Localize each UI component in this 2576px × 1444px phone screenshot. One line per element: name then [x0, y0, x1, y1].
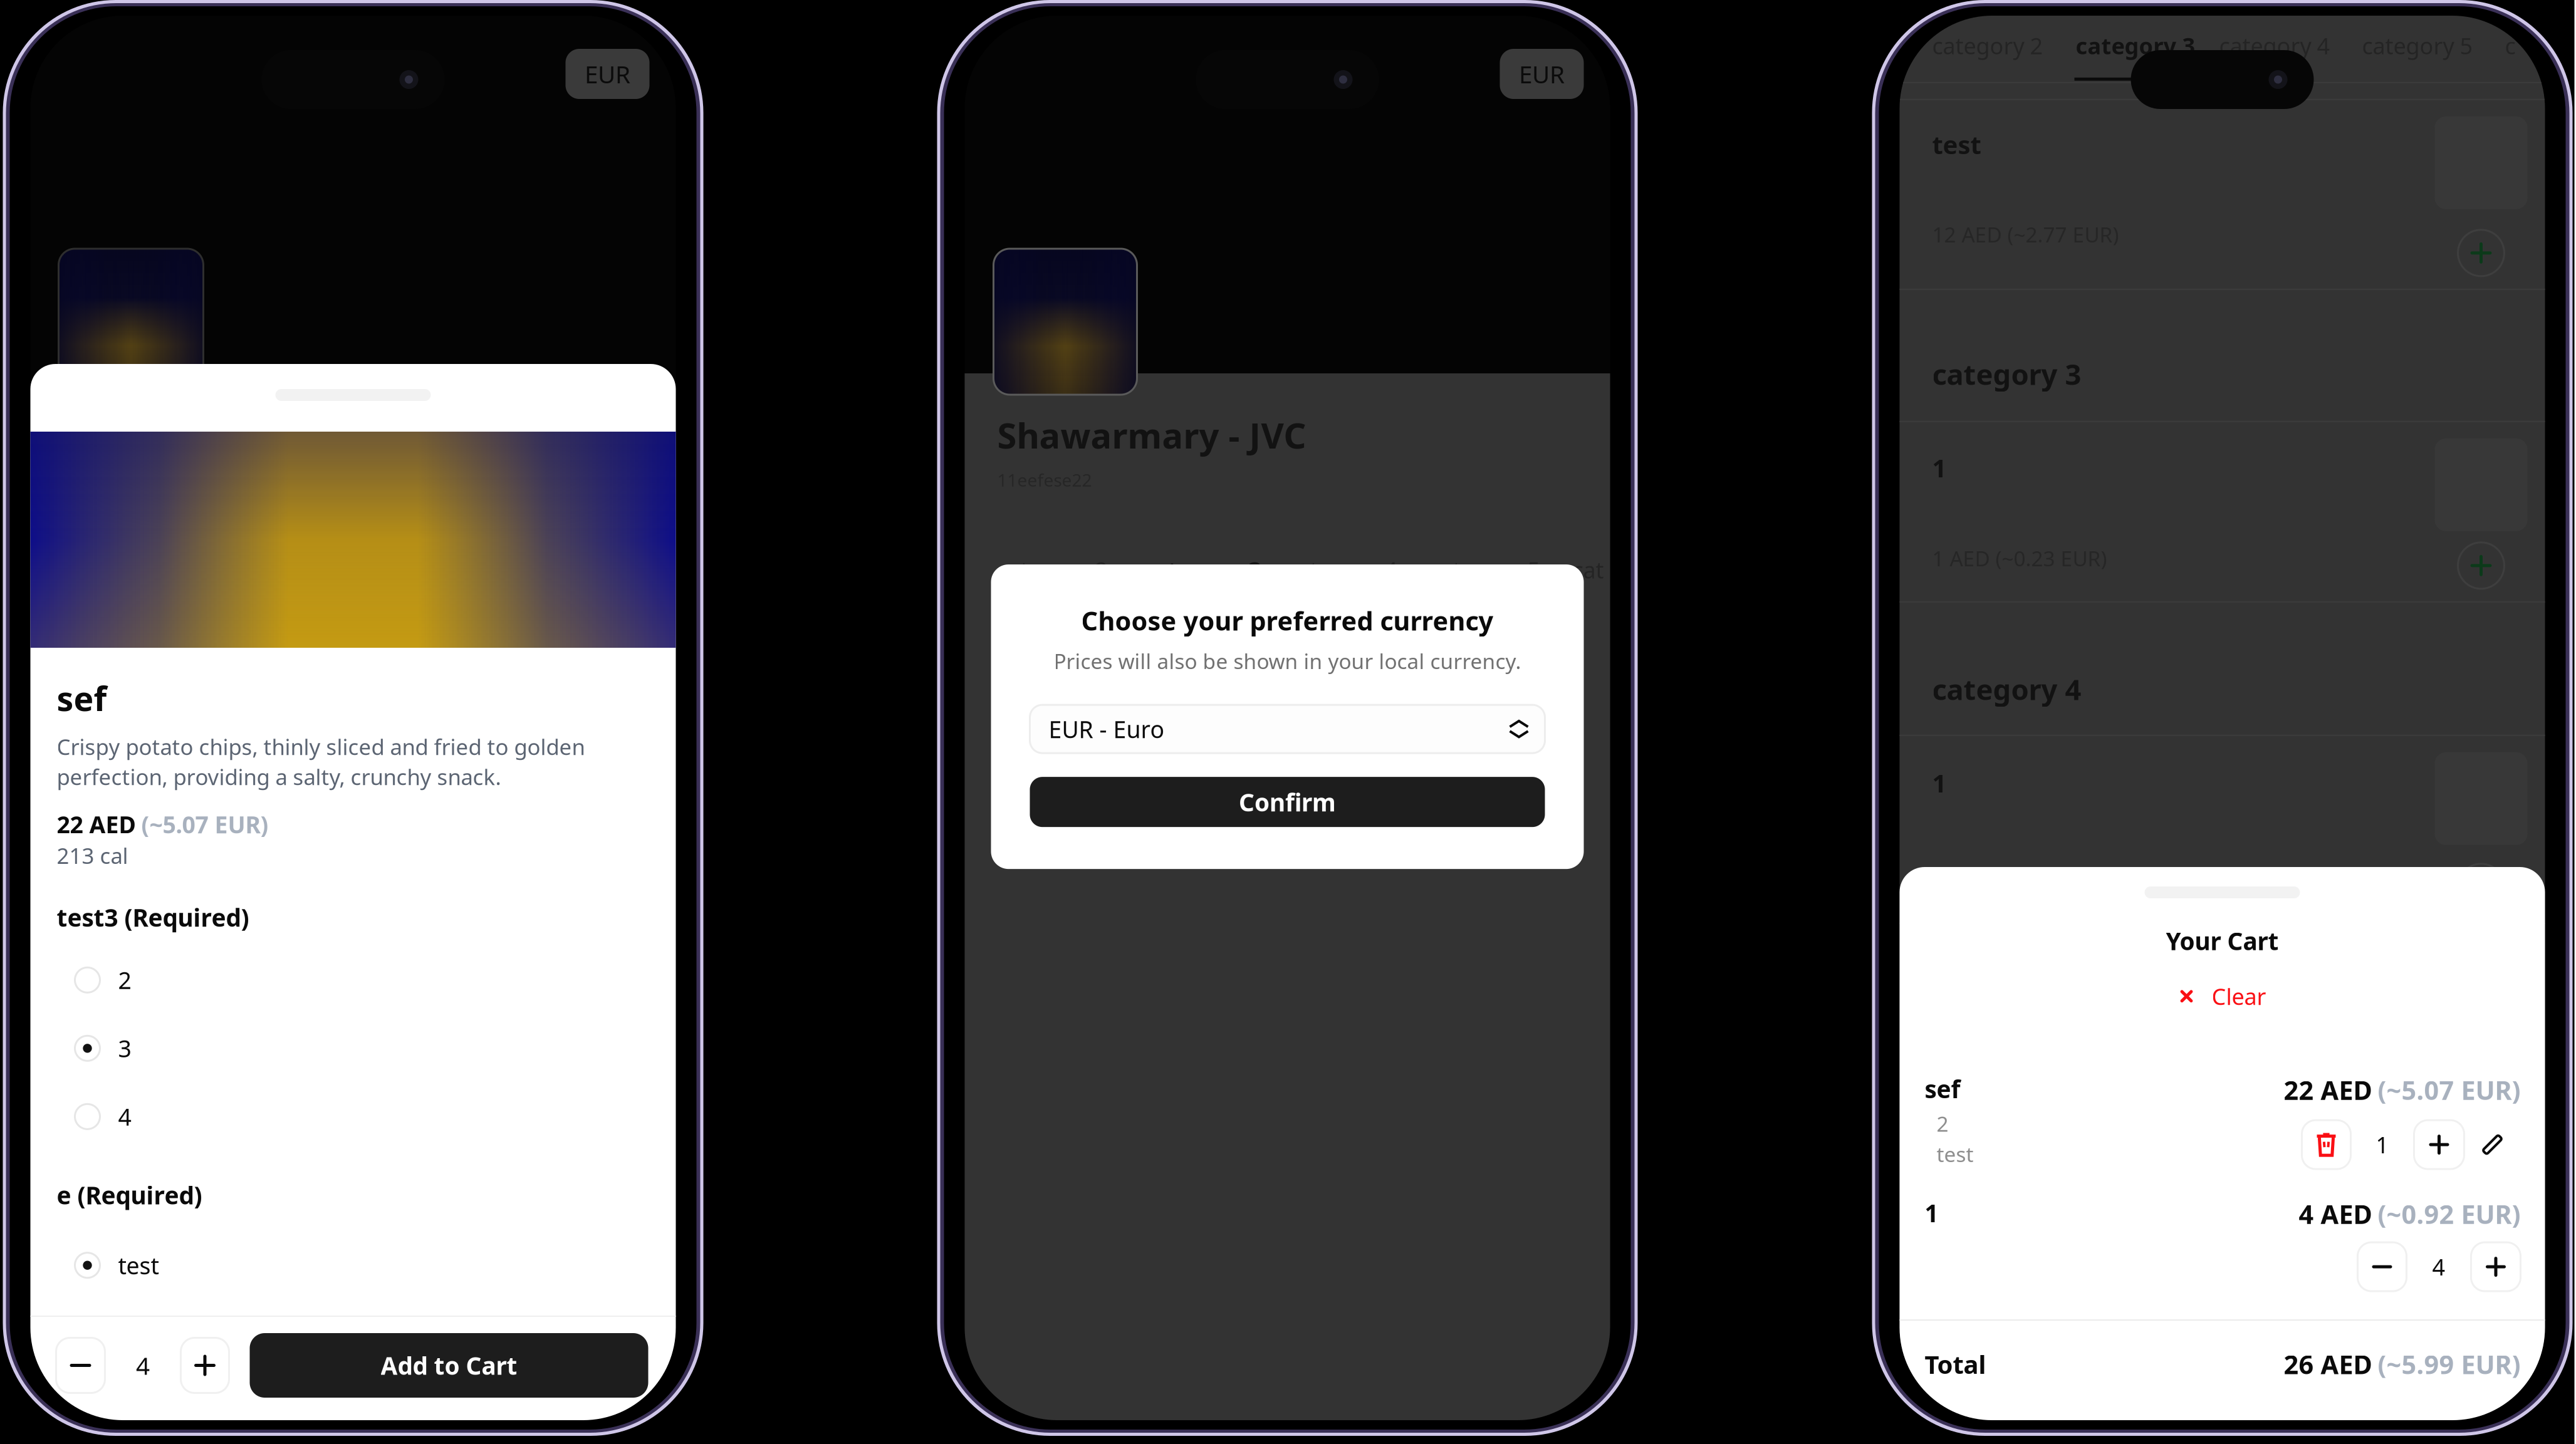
- staticText: test: [1932, 128, 1981, 161]
- staticText: EUR: [1519, 58, 1565, 90]
- staticText: Shawarmary - JVC: [997, 412, 1306, 458]
- staticText: category 4: [2219, 31, 2330, 61]
- staticText: cat: [1572, 555, 1604, 585]
- staticText: 2: [118, 965, 131, 996]
- staticText: category 5: [1430, 555, 1541, 585]
- staticText: category 5: [2362, 31, 2473, 61]
- staticText: test: [1937, 1140, 1974, 1168]
- staticText: category 3: [1932, 355, 2081, 393]
- staticText: perfection, providing a salty, crunchy s…: [57, 762, 501, 791]
- staticText: 12 AED (~2.77 EUR): [1932, 220, 2119, 248]
- staticText: 22 AED: [57, 809, 136, 840]
- staticText: Prices will also be shown in your local …: [1054, 647, 1521, 675]
- staticText: Your Cart: [2166, 925, 2279, 957]
- staticText: category 2: [997, 555, 1108, 585]
- button[interactable]: Decrease quantity: [56, 1338, 105, 1393]
- staticText: Add to Cart: [381, 1349, 517, 1381]
- staticText: category 4: [1932, 670, 2081, 708]
- staticText: 4: [136, 1349, 150, 1381]
- button[interactable]: Add to Cart: [250, 1333, 648, 1398]
- button[interactable]: Clear: [2178, 979, 2266, 1014]
- staticText: 26 AED: [2284, 1347, 2372, 1381]
- staticText: EUR - Euro: [1049, 713, 1165, 745]
- staticText: 4 AED: [2299, 1197, 2372, 1231]
- staticText: 2: [1937, 1110, 1948, 1138]
- staticText: Choose your preferred currency: [1081, 603, 1494, 638]
- button[interactable]: 4: [57, 1082, 495, 1151]
- button[interactable]: Increase quantity: [181, 1338, 229, 1393]
- button[interactable]: Edit item: [2464, 1120, 2521, 1169]
- button[interactable]: Remove item: [2302, 1120, 2351, 1169]
- staticText: 1: [1932, 451, 1947, 484]
- staticText: e (Required): [57, 1179, 202, 1211]
- staticText: sef: [1925, 1073, 1960, 1105]
- button[interactable]: Increase quantity: [2414, 1120, 2464, 1169]
- staticText: Confirm: [1239, 786, 1336, 818]
- staticText: c: [2505, 31, 2516, 61]
- staticText: sef: [57, 676, 107, 720]
- staticText: test: [118, 1250, 159, 1281]
- staticText: (~0.92 EUR): [2378, 1197, 2521, 1231]
- button[interactable]: EUR: [1500, 49, 1584, 99]
- button[interactable]: Decrease quantity: [2358, 1242, 2407, 1291]
- staticText: 3: [118, 1033, 131, 1064]
- staticText: 11eefese22: [997, 468, 1092, 492]
- staticText: Clear: [2212, 981, 2266, 1011]
- staticText: 1: [1932, 766, 1947, 799]
- staticText: (~5.99 EUR): [2378, 1347, 2521, 1381]
- staticText: 1: [2376, 1130, 2389, 1160]
- staticText: (~5.07 EUR): [141, 809, 269, 840]
- staticText: category 4: [1287, 555, 1398, 585]
- button[interactable]: EUR: [566, 49, 649, 99]
- staticText: category 3: [2076, 31, 2195, 61]
- staticText: 4: [118, 1101, 131, 1132]
- button[interactable]: Increase quantity: [2471, 1242, 2521, 1291]
- button[interactable]: Confirm: [1030, 777, 1545, 827]
- staticText: 4: [2432, 1252, 2445, 1282]
- staticText: 213 cal: [57, 841, 128, 870]
- staticText: test3 (Required): [57, 901, 249, 933]
- staticText: 1 AED (~0.23 EUR): [1932, 544, 2107, 572]
- button[interactable]: test: [57, 1231, 495, 1299]
- button[interactable]: 3: [57, 1014, 495, 1082]
- staticText: 22 AED: [2284, 1073, 2372, 1107]
- button[interactable]: 2: [57, 946, 495, 1014]
- staticText: Total: [1925, 1348, 1986, 1381]
- staticText: EUR: [585, 58, 630, 90]
- staticText: category 3: [1142, 555, 1262, 585]
- staticText: Crispy potato chips, thinly sliced and f…: [57, 732, 585, 761]
- staticText: 1: [1925, 1197, 1938, 1229]
- staticText: category 2: [1932, 31, 2043, 61]
- staticText: (~5.07 EUR): [2378, 1073, 2521, 1107]
